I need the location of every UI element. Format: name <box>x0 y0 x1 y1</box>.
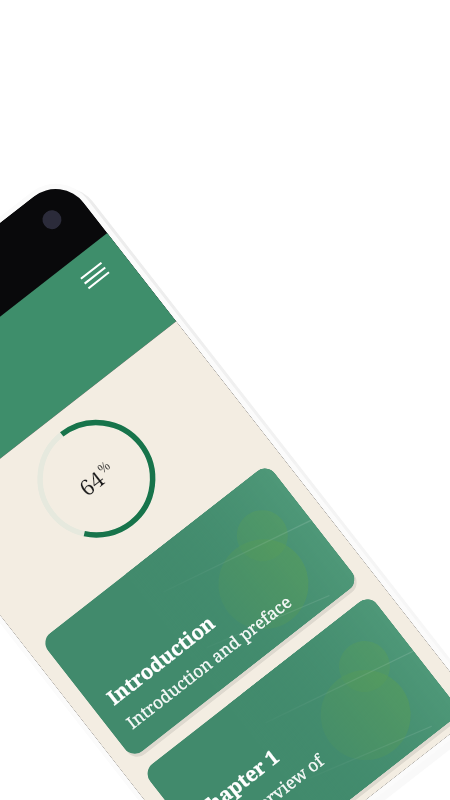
staticText: Introduction and preface <box>121 590 296 734</box>
staticText: % <box>93 456 114 478</box>
button[interactable]: Reading progress 64 percent <box>13 396 179 561</box>
staticText: Chapter 1 <box>190 743 285 800</box>
button[interactable]: Introduction <box>40 463 359 759</box>
staticText: Introduction <box>101 609 220 711</box>
button[interactable]: Chapter 1 <box>142 594 450 800</box>
button[interactable]: Menu <box>64 245 126 306</box>
staticText: The overview of protection <box>211 748 342 800</box>
staticText: 64 <box>72 463 110 502</box>
